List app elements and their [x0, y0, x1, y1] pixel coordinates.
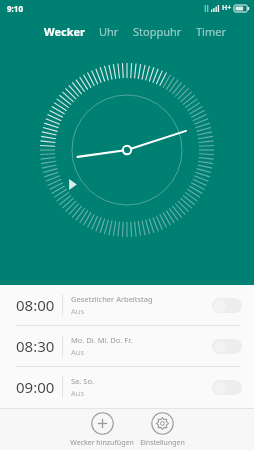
- button[interactable]: Einstellungen: [138, 412, 187, 448]
- staticText: Gesetzlicher Arbeitstag: [71, 294, 153, 304]
- staticText: Sa. So.: [71, 376, 94, 386]
- button[interactable]: Wecker ein- oder ausschalten: [212, 380, 242, 395]
- button[interactable]: 08:00: [0, 285, 254, 325]
- staticText: 9:10: [7, 3, 23, 14]
- button[interactable]: Timer: [196, 22, 226, 41]
- staticText: Einstellungen: [140, 438, 185, 448]
- staticText: H+: [222, 3, 232, 13]
- button[interactable]: Wecker ein- oder ausschalten: [212, 298, 242, 313]
- button[interactable]: 09:00: [0, 367, 254, 407]
- staticText: Wecker hinzufügen: [70, 438, 134, 448]
- button[interactable]: Uhr: [99, 22, 119, 41]
- staticText: Mo. Di. Mi. Do. Fr.: [71, 335, 133, 345]
- button[interactable]: Stoppuhr: [133, 22, 182, 41]
- staticText: 09:00: [16, 377, 55, 397]
- staticText: 08:30: [16, 336, 55, 356]
- button[interactable]: Wecker: [44, 22, 85, 41]
- staticText: 08:00: [16, 295, 55, 315]
- staticText: Aus: [71, 388, 85, 398]
- button[interactable]: Wecker hinzufügen: [68, 412, 136, 448]
- other: Wecker hinzufügen: [91, 412, 114, 435]
- staticText: Wecker: [44, 24, 85, 39]
- button[interactable]: 08:30: [0, 326, 254, 366]
- other: Einstellungen: [151, 412, 174, 435]
- staticText: Timer: [196, 24, 226, 39]
- staticText: Aus: [71, 306, 85, 316]
- staticText: Stoppuhr: [133, 24, 182, 39]
- staticText: Aus: [71, 347, 85, 357]
- staticText: Uhr: [99, 24, 119, 39]
- button[interactable]: Wecker ein- oder ausschalten: [212, 339, 242, 354]
